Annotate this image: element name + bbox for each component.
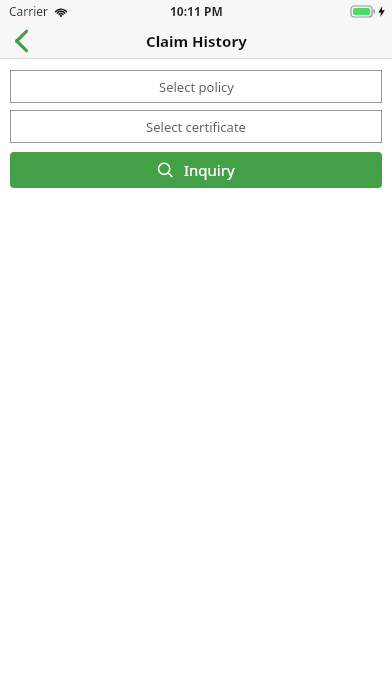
- staticText: Carrier: [9, 3, 49, 19]
- staticText: Select policy: [159, 78, 234, 96]
- staticText: Claim History: [146, 31, 247, 51]
- staticText: 10:11 PM: [170, 3, 223, 19]
- staticText: Select certificate: [146, 118, 246, 136]
- button[interactable]: Inquiry: [10, 152, 382, 188]
- staticText: Inquiry: [184, 160, 235, 180]
- button[interactable]: Select certificate: [10, 110, 382, 143]
- button[interactable]: Select policy: [10, 70, 382, 103]
- button[interactable]: Back: [0, 22, 44, 59]
